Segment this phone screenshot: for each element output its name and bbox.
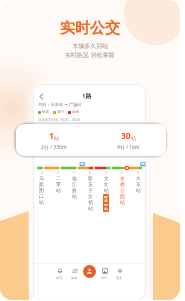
staticText: 公 (120, 187, 125, 193)
button[interactable]: 更多 (112, 265, 127, 281)
staticText: 东 (88, 181, 93, 187)
staticText: 缓行 (57, 110, 65, 115)
button[interactable]: 首页 (52, 265, 67, 281)
staticText: 站 (136, 187, 141, 193)
staticText: 拥堵 (72, 110, 80, 115)
staticText: 站 (54, 135, 59, 141)
staticText: 站 (104, 187, 109, 193)
staticText: 影 (88, 175, 93, 181)
staticText: 首页 (56, 276, 63, 280)
staticText: 站 (72, 193, 77, 199)
staticText: 口 (39, 193, 44, 199)
staticText: 榜 (120, 181, 125, 187)
staticText: 文 (88, 193, 93, 199)
button[interactable]: 1 (16, 130, 91, 151)
staticText: 畅通 (42, 110, 50, 115)
button[interactable]: Back (37, 92, 46, 101)
button[interactable]: 换乘 (67, 265, 82, 281)
staticText: 2 (105, 171, 107, 175)
staticText: 2分 / 330m (41, 144, 67, 151)
staticText: 园 (120, 193, 125, 199)
staticText: 壮 (104, 181, 109, 187)
staticText: 1 (49, 130, 54, 142)
staticText: 3 (41, 171, 43, 175)
staticText: 路 (72, 187, 77, 193)
staticText: 5 (121, 171, 123, 175)
button[interactable]: 实时公交 (83, 265, 96, 278)
staticText: 临 (72, 175, 77, 181)
staticText: 4分 / 1km (117, 144, 140, 151)
staticText: 子 (88, 187, 93, 193)
staticText: 4 (89, 171, 91, 175)
staticText: 出行 (101, 276, 108, 280)
staticText: 2 (57, 171, 59, 175)
staticText: 馆 (88, 199, 93, 205)
button[interactable]: 30 (91, 130, 166, 151)
staticText: 首末班车时间 06:00 - 22:00 (38, 117, 81, 122)
staticText: 站 (131, 135, 136, 141)
staticText: 实时路况 轻松掌握 (65, 51, 115, 59)
staticText: 6 (137, 171, 139, 175)
staticText: 季 (56, 181, 61, 187)
button[interactable]: 出行 (97, 265, 112, 281)
staticText: 马 (39, 175, 44, 181)
staticText: 图 (39, 187, 44, 193)
staticText: 站 (120, 199, 125, 205)
staticText: 站 (56, 187, 61, 193)
staticText: 面 (39, 181, 44, 187)
staticText: 金 (120, 175, 125, 181)
staticText: 1路 (82, 92, 92, 100)
staticText: 到 (104, 203, 108, 207)
staticText: 换乘 (71, 276, 78, 280)
staticText: 文 (104, 175, 109, 181)
staticText: 站 (88, 205, 93, 211)
staticText: 将 (104, 199, 108, 203)
staticText: 二 (56, 175, 61, 181)
staticText: 更多 (116, 276, 123, 280)
staticText: 车 (136, 181, 141, 187)
staticText: 1 (73, 171, 75, 175)
staticText: 方向：火车站 → 广场站 (38, 102, 82, 108)
staticText: 车辆多久到站 (73, 42, 108, 49)
staticText: 站 (104, 207, 108, 211)
staticText: 站 (39, 199, 44, 205)
staticText: 即 (104, 195, 108, 199)
staticText: 30 (121, 130, 131, 142)
staticText: 江 (72, 181, 77, 187)
staticText: 火 (136, 175, 141, 181)
staticText: 实时公交 (60, 19, 120, 38)
